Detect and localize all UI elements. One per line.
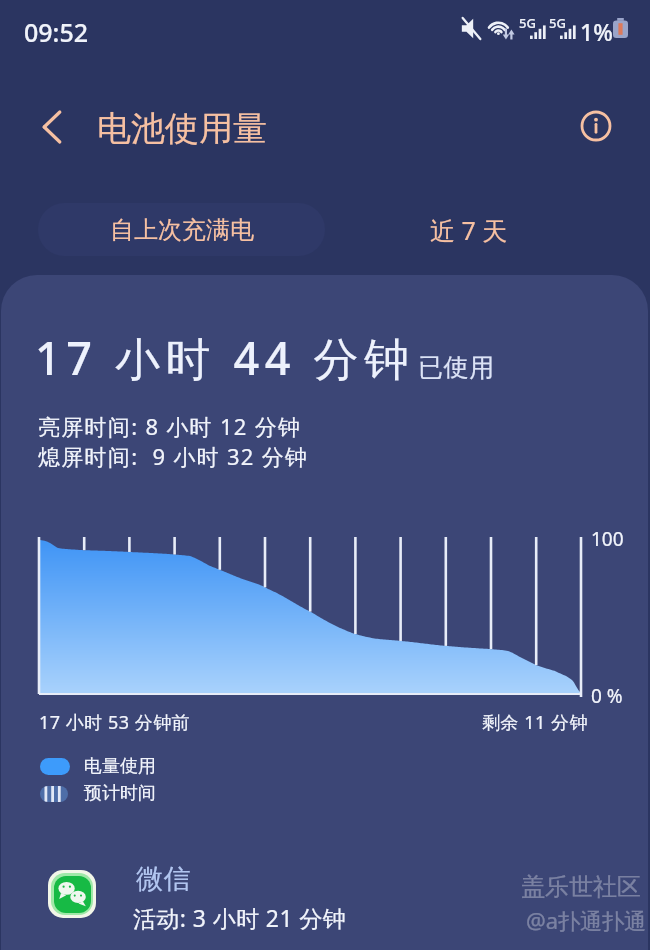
staticText: 微信 — [136, 862, 191, 896]
staticText: 5G — [549, 14, 566, 32]
staticText: 已使用 — [418, 352, 495, 383]
button[interactable]: 预计时间 — [40, 782, 156, 805]
staticText: 1% — [580, 16, 613, 47]
staticText: 熄屏时间: 9 小时 32 分钟 — [38, 441, 309, 471]
staticText: 盖乐世社区 — [521, 872, 641, 902]
button[interactable]: Information — [575, 105, 617, 147]
button[interactable]: 电量使用 — [40, 755, 156, 778]
staticText: 预计时间 — [84, 782, 156, 805]
staticText: 剩余 11 分钟 — [482, 710, 588, 735]
button[interactable]: 自上次充满电 — [38, 203, 325, 256]
staticText: 活动: 3 小时 21 分钟 — [133, 902, 347, 933]
staticText: 电池使用量 — [97, 107, 267, 150]
staticText: 5G — [519, 14, 536, 32]
staticText: @a扑通扑通 — [526, 905, 647, 935]
staticText: 17 小时 53 分钟前 — [39, 710, 191, 735]
staticText: 亮屏时间: 8 小时 12 分钟 — [38, 411, 302, 441]
staticText: 09:52 — [24, 15, 89, 49]
staticText: 0 % — [591, 683, 623, 709]
staticText: 电量使用 — [84, 755, 156, 778]
button[interactable]: 微信 — [0, 856, 650, 936]
staticText: 近 7 天 — [430, 213, 508, 247]
button[interactable]: Back — [29, 104, 75, 150]
button[interactable]: 近 7 天 — [325, 203, 612, 256]
staticText: 自上次充满电 — [110, 215, 254, 245]
staticText: 100 — [591, 526, 624, 552]
staticText: 17 小时 44 分钟 — [35, 327, 415, 388]
